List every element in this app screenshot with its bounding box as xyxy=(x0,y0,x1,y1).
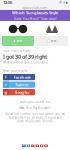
staticText: vote xyxy=(17,39,23,43)
staticText: I got 30 of 39 right xyxy=(3,53,47,60)
button[interactable]: g xyxy=(3,89,35,95)
staticText: YOUR RESULT IS READY xyxy=(3,49,32,52)
button[interactable]: vote xyxy=(36,22,68,46)
staticText: 12:06 xyxy=(3,0,12,5)
staticText: g xyxy=(4,89,7,95)
staticText: ıll ᯤ ▮ xyxy=(59,1,67,4)
staticText: MORE QUIZZES FOR YOU xyxy=(19,100,50,104)
button[interactable]: t xyxy=(3,81,35,88)
staticText: t xyxy=(5,82,7,87)
button[interactable]: Language xyxy=(22,145,26,147)
staticText: f xyxy=(5,74,7,80)
staticText: What you know about sunglasses? xyxy=(3,61,48,64)
button[interactable]: Language xyxy=(35,145,39,147)
staticText: QuizzClub is a free quiz site where you … xyxy=(5,112,65,123)
staticText: Facebook xyxy=(13,74,30,80)
staticText: Twitter xyxy=(15,82,29,87)
button[interactable]: Language xyxy=(40,145,43,147)
button[interactable]: f xyxy=(3,74,35,80)
button[interactable]: vote xyxy=(2,22,34,46)
staticText: Google+ xyxy=(14,89,29,95)
staticText: vote xyxy=(51,39,57,43)
staticText: Suits You Best? Vote now! xyxy=(13,16,56,21)
staticText: Share your results xyxy=(3,69,27,73)
button[interactable]: Language xyxy=(27,145,30,147)
staticText: Make Your Day Enjoyable xyxy=(19,106,51,110)
button[interactable]: Language xyxy=(44,145,48,147)
staticText: Which Sunglasses Style xyxy=(12,10,58,15)
button[interactable]: Language xyxy=(31,145,34,147)
staticText: quizzclub.com xyxy=(22,5,47,10)
